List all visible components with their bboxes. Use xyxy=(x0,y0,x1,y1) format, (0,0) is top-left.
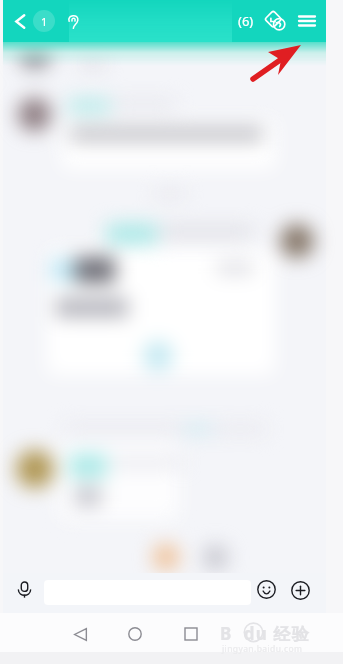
button[interactable]: Emoji xyxy=(255,578,278,601)
staticText: 1 xyxy=(41,14,48,29)
button[interactable]: Group members xyxy=(262,8,288,34)
button[interactable]: Voice message xyxy=(12,577,37,602)
staticText: jingyan.baidu.com xyxy=(222,643,303,655)
button[interactable]: Back xyxy=(66,620,94,648)
button[interactable]: Menu xyxy=(294,8,320,34)
button[interactable]: Back xyxy=(7,8,33,34)
button[interactable]: Unread count xyxy=(33,10,55,32)
button[interactable]: More options xyxy=(288,578,312,602)
button[interactable]: Listen xyxy=(63,11,83,31)
button[interactable]: Home xyxy=(121,620,149,648)
staticText: B du 经验 xyxy=(220,622,310,645)
button[interactable]: Recent apps xyxy=(177,620,205,648)
staticText: (6) xyxy=(238,12,254,30)
